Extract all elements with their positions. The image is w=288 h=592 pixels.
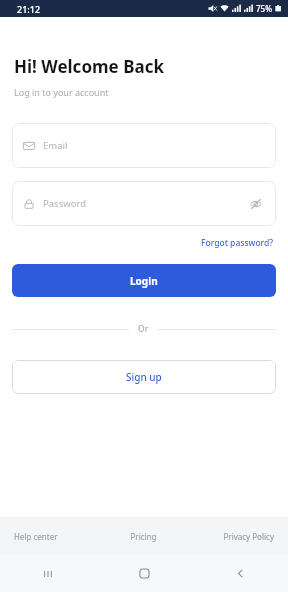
staticText: 75% (256, 3, 272, 14)
button[interactable]: Privacy Policy (187, 531, 274, 542)
button[interactable]: Home (96, 555, 192, 592)
button[interactable]: Pricing (100, 531, 187, 542)
button[interactable]: Forgot password? (199, 235, 276, 251)
button[interactable]: Back (192, 555, 288, 592)
staticText: Forgot password? (201, 237, 274, 249)
staticText: Hi! Welcome Back (14, 55, 164, 78)
button[interactable]: Recent apps (0, 555, 96, 592)
button[interactable]: Help center (14, 531, 100, 542)
staticText: Password (43, 197, 247, 210)
button[interactable]: Email (12, 123, 276, 168)
staticText: Sign up (126, 370, 162, 384)
staticText: Email (43, 139, 265, 152)
staticText: Help center (14, 531, 100, 542)
staticText: Log in to your account (14, 86, 109, 98)
staticText: 21:12 (17, 3, 41, 15)
button[interactable]: Password (12, 181, 276, 226)
button[interactable]: Sign up (12, 360, 276, 394)
button[interactable]: Show password (247, 195, 265, 213)
staticText: Or (138, 323, 149, 335)
staticText: Privacy Policy (187, 531, 274, 542)
staticText: Pricing (100, 531, 187, 542)
staticText: Login (130, 274, 158, 288)
button[interactable]: Login (12, 264, 276, 297)
